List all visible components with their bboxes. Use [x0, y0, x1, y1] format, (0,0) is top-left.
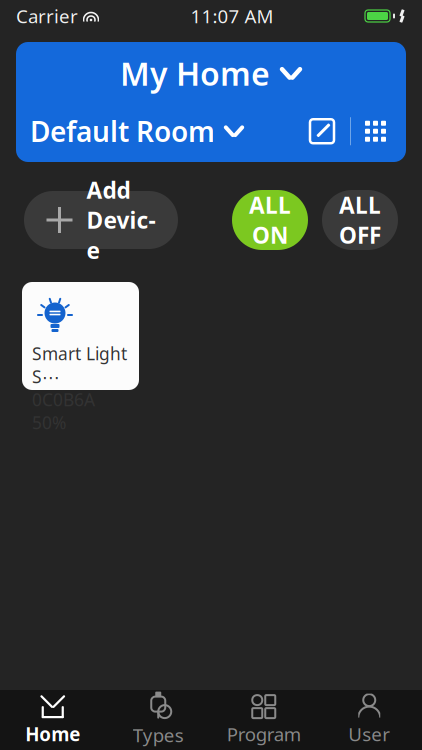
button[interactable]: My Home [16, 46, 406, 101]
button[interactable]: Edit room [302, 117, 342, 145]
button[interactable]: Home [0, 690, 105, 750]
staticText: 0C0B6A [32, 388, 95, 411]
button[interactable]: User [316, 690, 422, 750]
staticText: ALL [249, 190, 291, 220]
staticText: Carrier [16, 4, 78, 28]
staticText: ALL [339, 190, 381, 220]
staticText: My Home [120, 52, 270, 95]
staticText: Default Room [30, 113, 215, 150]
staticText: Types [133, 723, 184, 747]
button[interactable]: Default Room [30, 109, 244, 154]
staticText: Smart Light S⋯ [32, 342, 127, 388]
staticText: 50% [32, 411, 66, 434]
button[interactable]: Types [105, 690, 211, 750]
button[interactable]: ALL [322, 190, 398, 250]
button[interactable]: Add Device [24, 191, 178, 249]
staticText: ON [252, 220, 288, 250]
staticText: 11:07 AM [190, 4, 273, 28]
button[interactable]: Smart Light S⋯ [22, 282, 139, 390]
staticText: Program [227, 722, 301, 746]
staticText: Add Device [86, 175, 155, 265]
button[interactable]: Grid layout [359, 121, 392, 142]
staticText: OFF [339, 220, 381, 250]
staticText: User [348, 722, 390, 746]
staticText: Home [25, 722, 80, 746]
button[interactable]: Program [211, 690, 316, 750]
button[interactable]: ALL [232, 190, 308, 250]
